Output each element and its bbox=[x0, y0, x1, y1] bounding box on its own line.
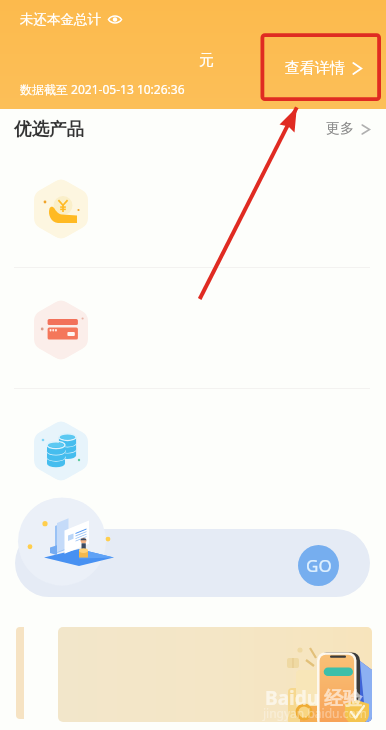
button[interactable]: Baidu 经验 bbox=[58, 627, 372, 722]
button[interactable]: 查看详情 bbox=[285, 59, 363, 78]
staticText: Baidu 经验 bbox=[265, 685, 362, 711]
staticText: 更多 bbox=[326, 120, 354, 138]
staticText: 元 bbox=[199, 51, 214, 70]
button[interactable] bbox=[15, 529, 370, 597]
button[interactable] bbox=[0, 393, 386, 514]
button[interactable] bbox=[0, 272, 386, 393]
button[interactable] bbox=[0, 151, 386, 272]
staticText: GO bbox=[306, 554, 332, 577]
staticText: 优选产品 bbox=[14, 118, 84, 140]
button[interactable]: 未还本金总计 bbox=[20, 11, 122, 28]
staticText: 数据截至 2021-05-13 10:26:36 bbox=[20, 81, 185, 97]
staticText: 未还本金总计 bbox=[20, 11, 101, 28]
staticText: 查看详情 bbox=[285, 59, 345, 78]
button[interactable]: GO bbox=[298, 545, 339, 586]
button[interactable]: 更多 bbox=[326, 120, 371, 138]
staticText: jingyan.baidu.com bbox=[263, 705, 367, 721]
